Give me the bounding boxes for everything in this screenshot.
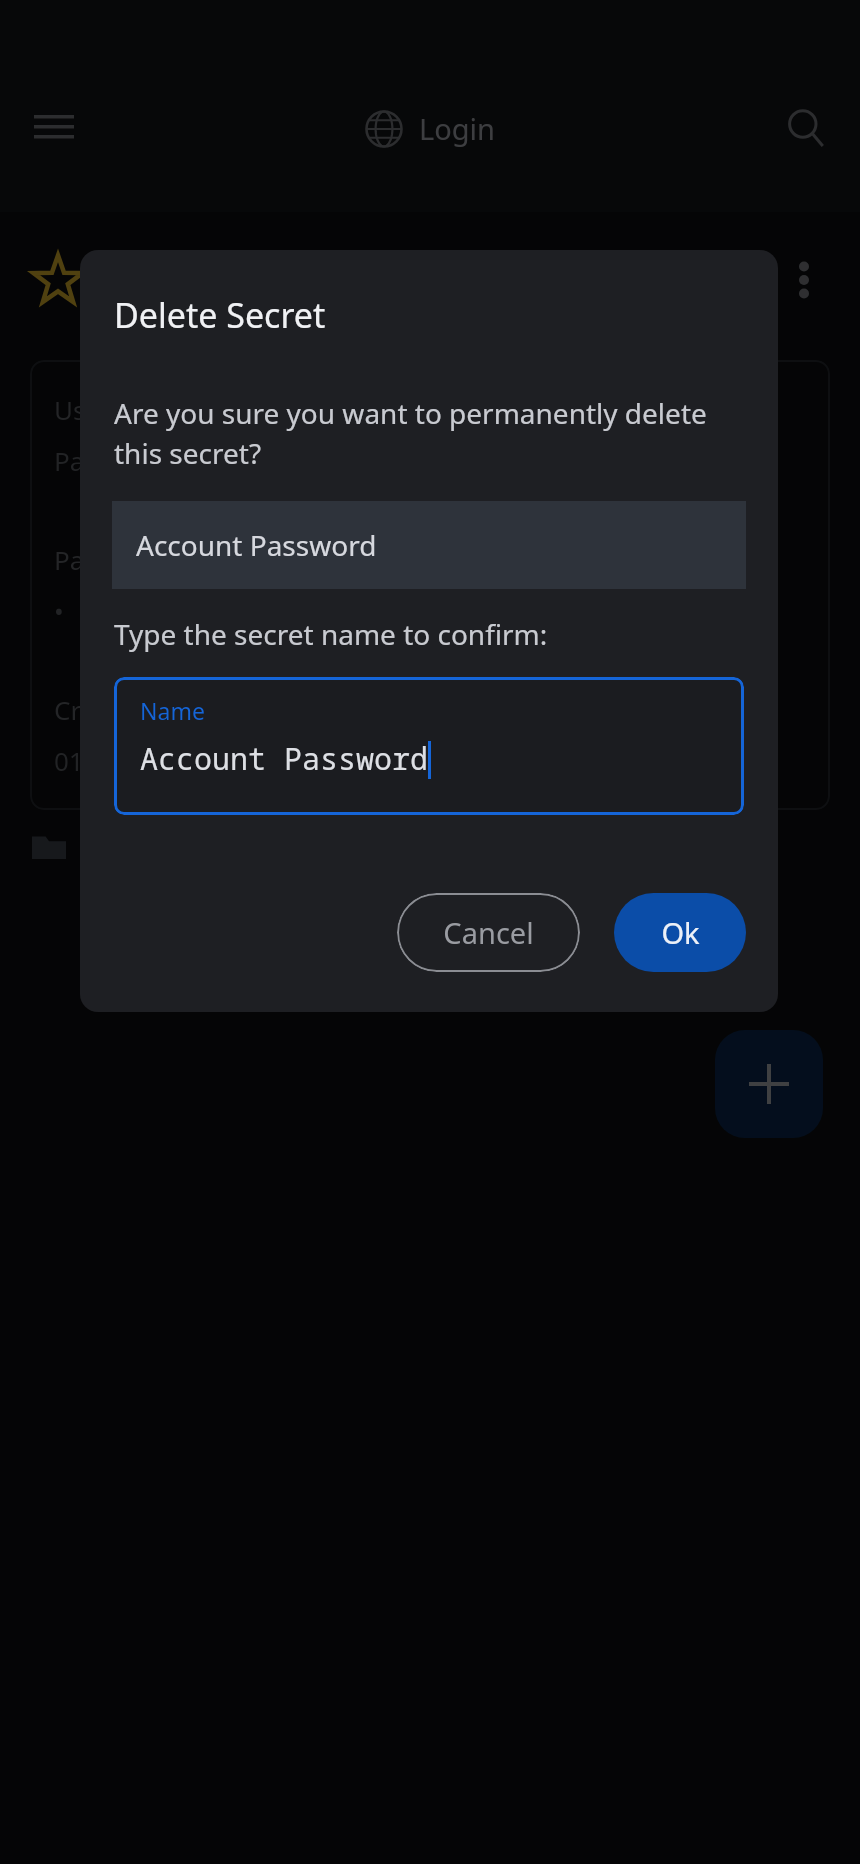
staticText: Name — [140, 695, 205, 726]
button[interactable]: Name — [114, 677, 744, 815]
staticText: Account Password — [140, 738, 428, 779]
button[interactable]: Search — [770, 92, 842, 164]
button[interactable]: Cancel — [397, 893, 580, 972]
button[interactable]: Default — [24, 820, 182, 871]
button[interactable]: Menu — [18, 92, 90, 164]
staticText: Username — [54, 392, 181, 427]
staticText: Created — [54, 692, 150, 727]
staticText: Account Password — [136, 526, 377, 564]
button[interactable]: Favorite — [30, 252, 86, 308]
button[interactable]: More options — [776, 252, 832, 308]
staticText: Password — [54, 542, 172, 577]
staticText: Delete Secret — [114, 292, 326, 338]
staticText: Are you sure you want to permanently del… — [114, 394, 707, 473]
staticText: Ok — [661, 913, 700, 952]
button[interactable]: Ok — [614, 893, 746, 972]
staticText: • — [54, 593, 64, 628]
staticText: Type the secret name to confirm: — [114, 615, 548, 653]
staticText: Cancel — [443, 913, 534, 952]
button[interactable]: Add — [715, 1030, 823, 1138]
staticText: 01.01.2024 — [54, 743, 187, 778]
staticText: Paul — [54, 443, 108, 478]
staticText: Login — [419, 109, 495, 148]
